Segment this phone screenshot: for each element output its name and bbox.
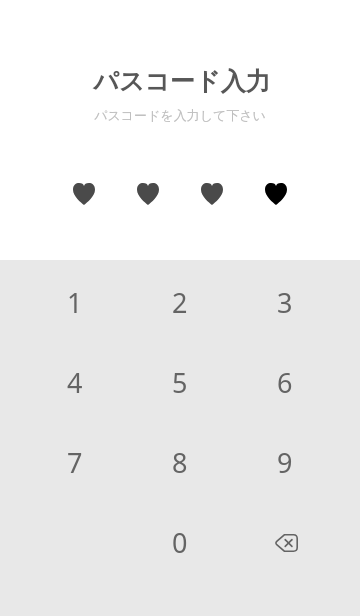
button[interactable]: 9 xyxy=(235,422,335,502)
staticText: 2 xyxy=(172,284,188,321)
staticText: 1 xyxy=(67,284,83,321)
button[interactable]: 3 xyxy=(235,262,335,342)
staticText: 0 xyxy=(172,524,188,561)
staticText: パスコード入力 xyxy=(93,66,271,97)
staticText: 5 xyxy=(172,364,188,401)
staticText: 4 xyxy=(67,364,83,401)
button[interactable]: 2 xyxy=(130,262,230,342)
staticText: 8 xyxy=(172,444,188,481)
staticText: 6 xyxy=(277,364,293,401)
button[interactable]: 5 xyxy=(130,342,230,422)
button[interactable]: 7 xyxy=(25,422,125,502)
button[interactable]: Delete xyxy=(235,502,335,582)
staticText: 9 xyxy=(277,444,293,481)
button[interactable]: 8 xyxy=(130,422,230,502)
staticText: パスコードを入力して下さい xyxy=(94,107,266,123)
button[interactable]: 6 xyxy=(235,342,335,422)
button[interactable]: 0 xyxy=(130,502,230,582)
button[interactable]: 1 xyxy=(25,262,125,342)
button[interactable]: 4 xyxy=(25,342,125,422)
staticText: 3 xyxy=(277,284,293,321)
staticText: 7 xyxy=(67,444,83,481)
